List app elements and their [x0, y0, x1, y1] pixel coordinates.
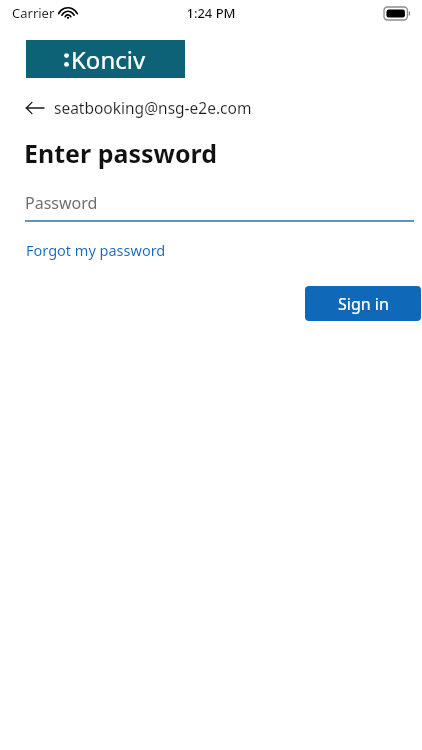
staticText: 1:24 PM — [186, 4, 236, 22]
button[interactable]: Forgot my password — [25, 238, 167, 262]
staticText: Carrier — [12, 4, 55, 22]
staticText: Forgot my password — [26, 240, 166, 260]
button[interactable]: Password — [25, 192, 414, 222]
staticText: Password — [25, 192, 98, 214]
button[interactable]: Konciv — [26, 40, 185, 78]
staticText: seatbooking@nsg-e2e.com — [54, 97, 252, 118]
staticText: Konciv — [71, 43, 146, 76]
button[interactable]: Sign in — [305, 286, 421, 321]
staticText: Sign in — [338, 293, 389, 315]
button[interactable]: Back — [26, 95, 260, 120]
other: Back — [26, 101, 44, 115]
staticText: Enter password — [24, 136, 218, 170]
